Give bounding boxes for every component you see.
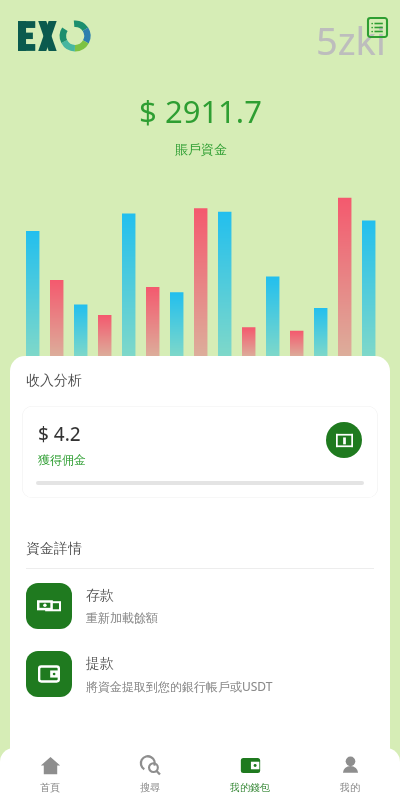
staticText: 資金詳情 — [26, 540, 82, 558]
button[interactable]: 提款 — [10, 645, 390, 703]
staticText: 將資金提取到您的銀行帳戶或USDT — [86, 678, 273, 694]
button[interactable]: 我的 — [300, 748, 400, 800]
button[interactable]: 存款 — [10, 577, 390, 635]
staticText: $ 2911.7 — [139, 90, 262, 132]
button[interactable]: EXO logo — [18, 12, 168, 60]
staticText: 收入分析 — [26, 372, 82, 390]
staticText: 我的錢包 — [230, 781, 270, 794]
staticText: 5zki — [316, 14, 386, 66]
button[interactable]: 我的錢包 — [200, 748, 300, 800]
other: Commission — [326, 422, 362, 458]
staticText: 獲得佣金 — [38, 452, 86, 467]
staticText: 賬戶資金 — [175, 141, 227, 157]
button[interactable]: $ 4.2 — [22, 406, 378, 498]
button[interactable]: Records — [364, 14, 390, 40]
staticText: 重新加載餘額 — [86, 610, 158, 625]
staticText: 提款 — [86, 655, 114, 673]
staticText: 搜尋 — [140, 781, 160, 794]
staticText: 存款 — [86, 587, 114, 605]
staticText: 首頁 — [40, 781, 60, 794]
staticText: 我的 — [340, 781, 360, 794]
button[interactable]: 首頁 — [0, 748, 100, 800]
button[interactable]: 搜尋 — [100, 748, 200, 800]
staticText: $ 4.2 — [38, 421, 81, 447]
